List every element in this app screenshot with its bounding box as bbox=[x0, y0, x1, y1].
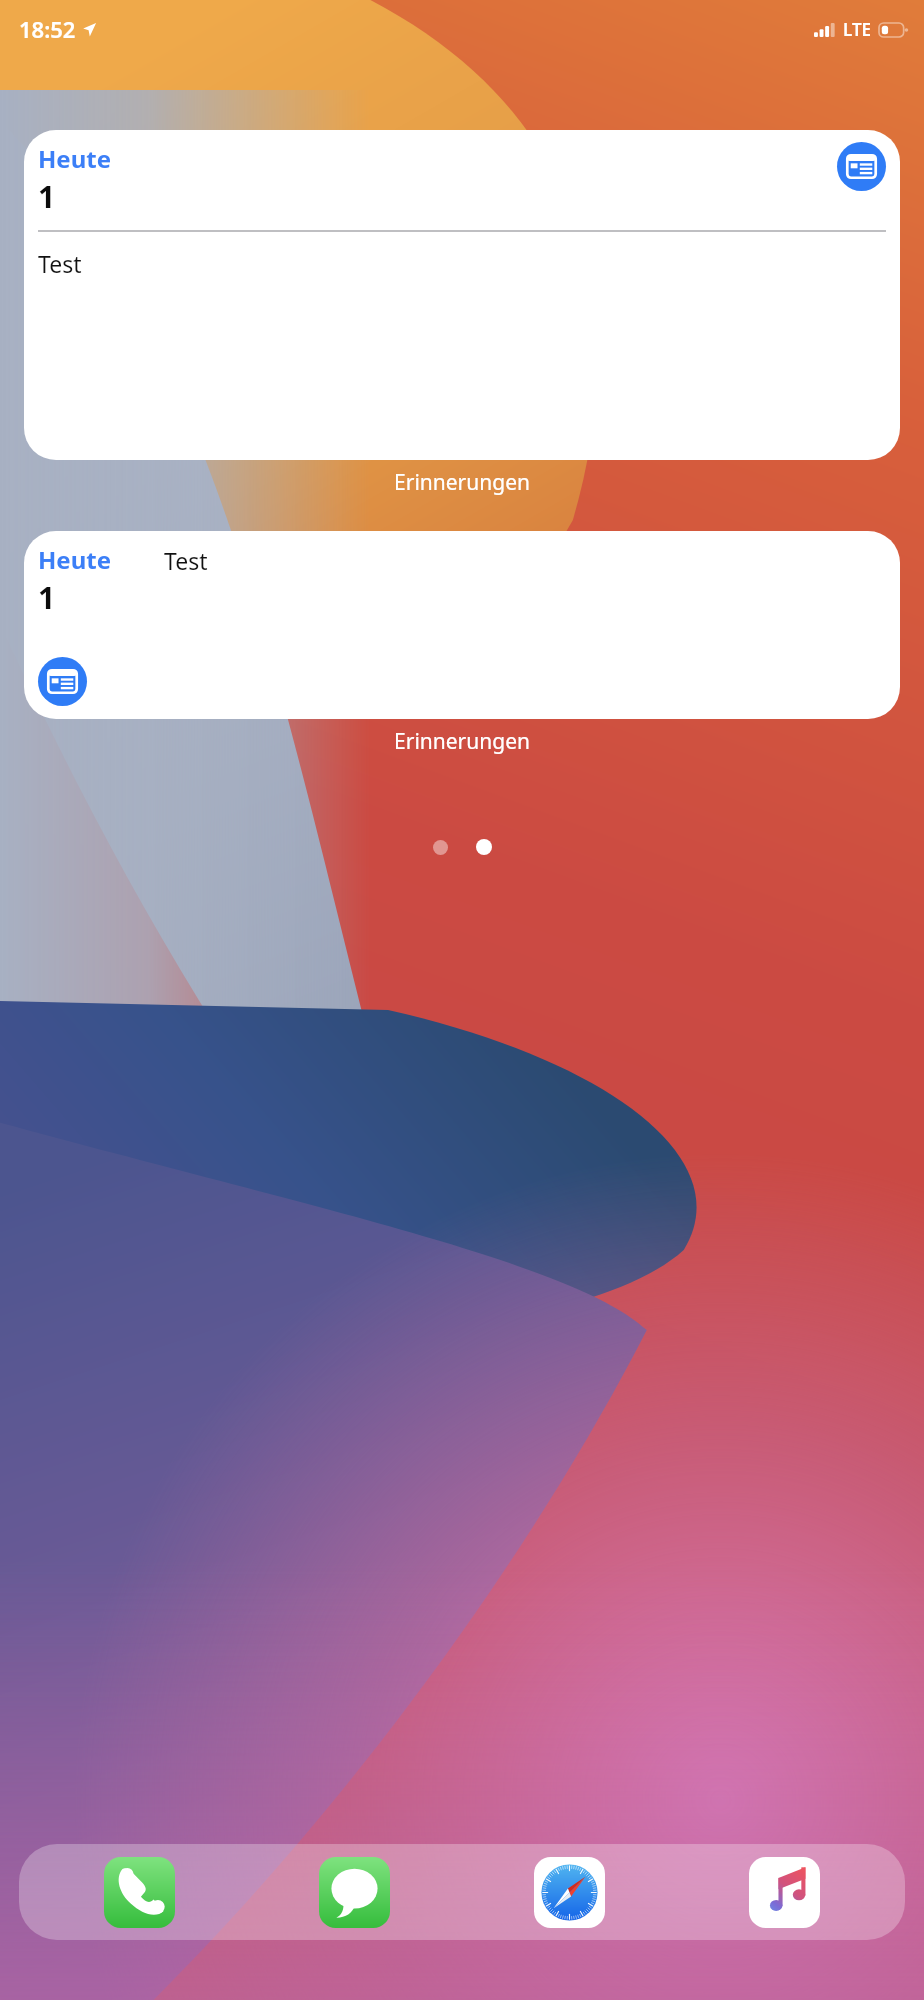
button[interactable]: Heute bbox=[24, 130, 900, 460]
button[interactable]: Music bbox=[749, 1857, 820, 1928]
button[interactable]: Page 2 bbox=[476, 839, 492, 855]
staticText: Test bbox=[38, 248, 82, 279]
staticText: Erinnerungen bbox=[0, 468, 924, 497]
staticText: Test bbox=[164, 545, 208, 576]
staticText: Erinnerungen bbox=[0, 727, 924, 756]
button[interactable]: Page 1 bbox=[433, 840, 448, 855]
staticText: Heute bbox=[38, 142, 112, 175]
button[interactable]: Heute bbox=[24, 531, 900, 719]
staticText: 1 bbox=[38, 176, 56, 217]
button[interactable]: Phone bbox=[104, 1857, 175, 1928]
button[interactable]: Erinnerungen bbox=[837, 142, 886, 191]
button[interactable]: Messages bbox=[319, 1857, 390, 1928]
button[interactable]: Erinnerungen bbox=[38, 657, 87, 706]
staticText: LTE bbox=[843, 18, 872, 41]
staticText: 1 bbox=[38, 577, 56, 618]
staticText: Heute bbox=[38, 543, 112, 576]
button[interactable]: Safari bbox=[534, 1857, 605, 1928]
staticText: 18:52 bbox=[19, 14, 76, 44]
